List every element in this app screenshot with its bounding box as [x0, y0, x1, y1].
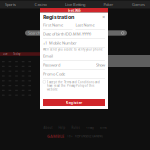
- staticText: Games: [132, 2, 145, 7]
- staticText: Help: [58, 126, 65, 129]
- staticText: Email: [43, 53, 53, 58]
- staticText: bet365: [67, 8, 80, 13]
- staticText: ✕: [102, 15, 105, 19]
- staticText: Registration: [43, 13, 74, 21]
- staticText: Privacy: [85, 126, 93, 129]
- staticText: Mobile Number: [49, 40, 77, 45]
- staticText: I accept the Terms and Conditions and ha…: [47, 80, 100, 91]
- staticText: GAMBLE: [47, 133, 64, 139]
- staticText: About: [43, 126, 52, 129]
- button[interactable]: Help: [58, 126, 65, 129]
- button[interactable]: Rules: [71, 126, 79, 129]
- button[interactable]: Register: [43, 99, 105, 106]
- staticText: Poker: [103, 2, 113, 7]
- staticText: 18+ RESPONSIBLE GAMING: [67, 134, 103, 138]
- button[interactable]: Poker: [102, 0, 114, 8]
- staticText: Today: [13, 52, 20, 56]
- staticText: Terms: [99, 126, 106, 129]
- button[interactable]: Games: [131, 0, 146, 8]
- button[interactable]: Live Betting: [64, 0, 86, 8]
- staticText: We'll send you a code to verify your pho…: [43, 48, 103, 51]
- staticText: Casino: [34, 2, 46, 7]
- staticText: Password: [43, 62, 60, 67]
- staticText: First Name: [43, 22, 63, 27]
- staticText: Search: [28, 30, 40, 36]
- staticText: Live Betting: [65, 2, 85, 7]
- staticText: Register: [65, 100, 82, 105]
- staticText: Date of birth (DD-MM-YYYY): [43, 31, 91, 36]
- staticText: Last Name: [75, 22, 94, 27]
- staticText: Promo Code: [43, 71, 65, 76]
- staticText: Show: [96, 62, 105, 67]
- button[interactable]: Sports: [4, 0, 17, 8]
- staticText: +1: [43, 40, 47, 46]
- button[interactable]: Close: [102, 15, 105, 19]
- button[interactable]: About: [43, 126, 52, 129]
- button[interactable]: Privacy: [85, 126, 93, 129]
- button[interactable]: Terms: [99, 126, 106, 129]
- button[interactable]: Casino: [33, 0, 47, 8]
- staticText: Rules: [71, 126, 79, 129]
- staticText: Live: [3, 52, 8, 56]
- staticText: Sports: [5, 2, 16, 7]
